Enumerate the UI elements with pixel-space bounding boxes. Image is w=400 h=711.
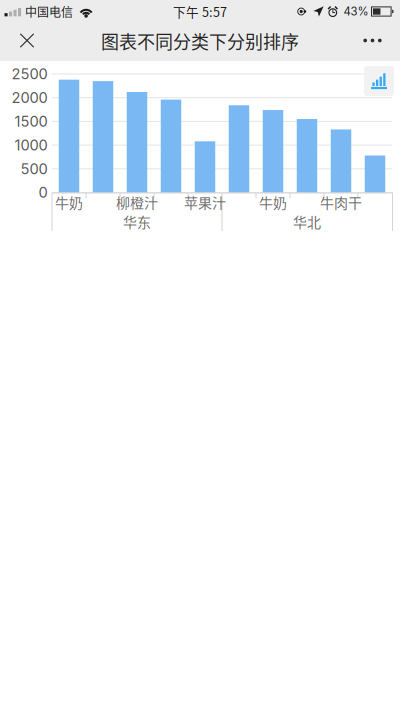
staticText: 1000 xyxy=(14,136,47,154)
staticText: 苹果汁 xyxy=(184,192,226,212)
staticText: 华北 xyxy=(293,211,321,232)
staticText: 500 xyxy=(20,160,47,178)
staticText: 图表不同分类下分别排序 xyxy=(101,28,299,54)
staticText: 下午 5:57 xyxy=(173,2,227,21)
staticText: 华东 xyxy=(123,211,151,232)
staticText: 柳橙汁 xyxy=(116,192,158,212)
staticText: 1500 xyxy=(14,112,47,130)
staticText: 0 xyxy=(38,184,47,201)
button[interactable]: 切换图表类型 xyxy=(364,66,394,96)
staticText: 牛奶 xyxy=(259,192,287,212)
staticText: 牛奶 xyxy=(55,192,83,212)
button[interactable]: 更多 xyxy=(345,23,400,61)
staticText: 2500 xyxy=(11,65,47,83)
staticText: 2000 xyxy=(11,89,47,106)
staticText: 43% xyxy=(343,5,368,18)
staticText: 中国电信 xyxy=(25,3,73,20)
staticText: 牛肉干 xyxy=(320,192,362,212)
button[interactable]: 关闭 xyxy=(0,23,54,61)
